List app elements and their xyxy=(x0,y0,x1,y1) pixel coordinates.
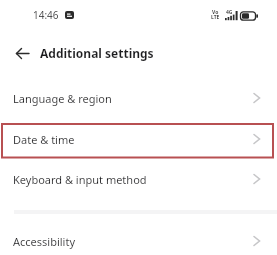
button[interactable]: Language & region xyxy=(0,82,277,114)
button[interactable]: Keyboard & input method xyxy=(0,163,277,195)
button[interactable]: Date & time xyxy=(0,123,277,155)
staticText: Additional settings xyxy=(40,45,154,61)
staticText: Accessibility xyxy=(13,234,76,249)
staticText: Language & region xyxy=(13,91,112,106)
staticText: 14:46 xyxy=(33,8,59,22)
staticText: 4G xyxy=(226,9,233,16)
staticText: Date & time xyxy=(13,132,75,147)
staticText: Keyboard & input method xyxy=(13,172,147,187)
button[interactable]: Accessibility xyxy=(0,225,277,255)
staticText: Vo xyxy=(212,9,219,16)
button[interactable] xyxy=(8,42,36,64)
staticText: LTE xyxy=(211,14,220,21)
